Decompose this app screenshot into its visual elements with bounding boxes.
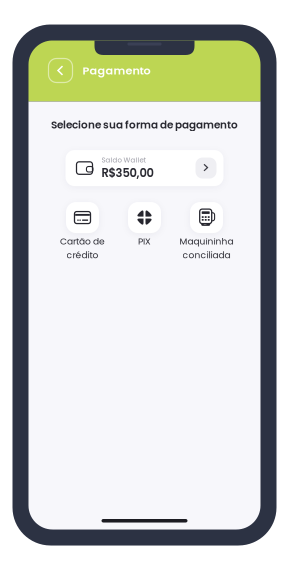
staticText: Pagamento: [82, 63, 150, 78]
staticText: crédito: [66, 249, 98, 261]
staticText: conciliada: [182, 249, 230, 261]
staticText: Selecione sua forma de pagamento: [51, 117, 238, 132]
staticText: R$350,00: [101, 165, 153, 181]
button[interactable]: Maquininha: [177, 202, 235, 258]
staticText: Maquininha: [179, 235, 233, 248]
button[interactable]: Saldo Wallet: [65, 150, 223, 186]
button[interactable]: PIX: [115, 202, 173, 258]
staticText: Saldo Wallet: [101, 155, 146, 165]
staticText: Cartão de: [60, 235, 105, 248]
button[interactable]: Cartão de: [53, 202, 111, 258]
button[interactable]: Voltar: [47, 57, 73, 83]
staticText: PIX: [138, 235, 151, 248]
